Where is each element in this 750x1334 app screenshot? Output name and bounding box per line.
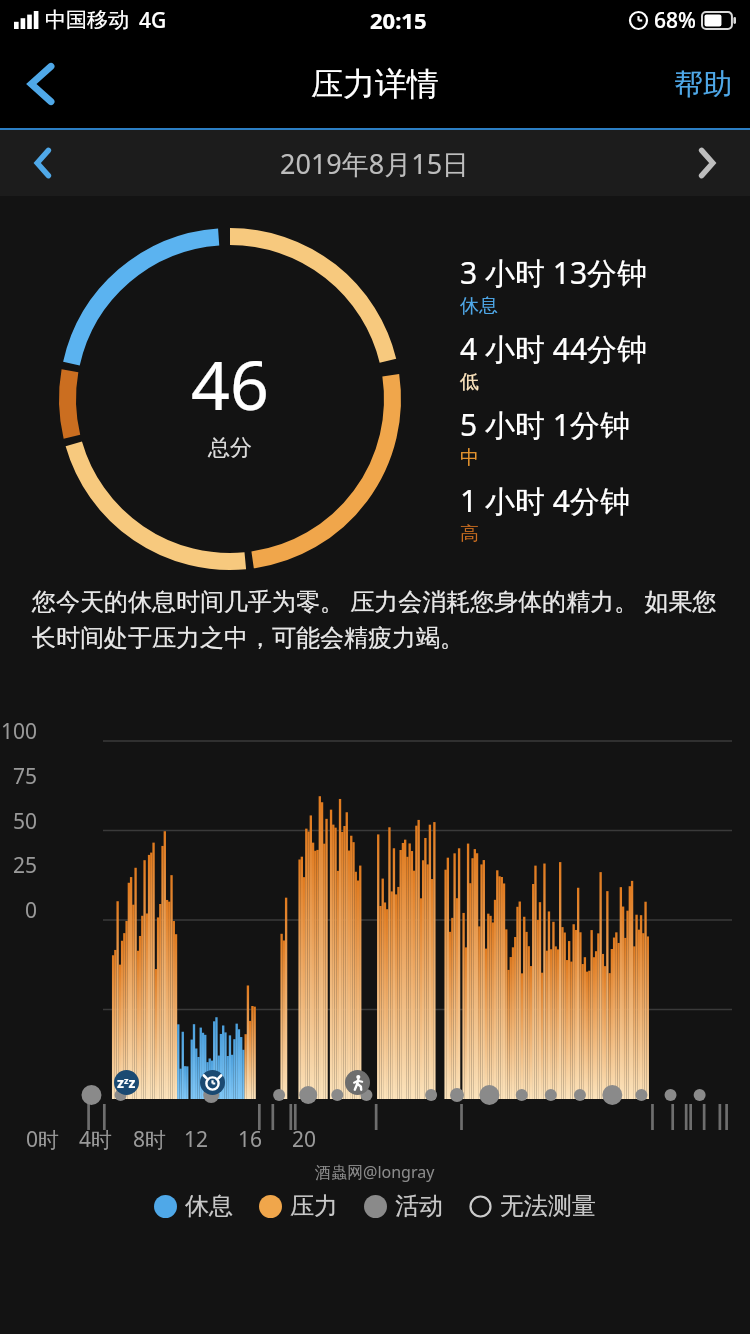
button[interactable]: Alarm	[200, 1070, 225, 1095]
staticText: 46	[191, 337, 269, 430]
staticText: 压力	[290, 1191, 338, 1221]
staticText: 0时	[26, 1125, 60, 1154]
staticText: 100	[1, 717, 38, 746]
staticText: 无法测量	[500, 1191, 596, 1221]
staticText: 高	[460, 522, 479, 546]
staticText: 1 小时 4分钟	[460, 480, 630, 521]
staticText: 50	[13, 807, 38, 836]
staticText: 低	[460, 370, 479, 394]
staticText: 休息	[185, 1191, 233, 1221]
staticText: 您今天的休息时间几乎为零。 压力会消耗您身体的精力。 如果您长时间处于压力之中，…	[32, 584, 718, 653]
staticText: 25	[13, 851, 38, 880]
button[interactable]: 休息	[154, 1191, 233, 1221]
staticText: 中国移动	[45, 7, 129, 33]
staticText: 16时	[238, 1125, 278, 1155]
staticText: 酒蟲网@longray	[315, 1161, 435, 1183]
staticText: 5 小时 1分钟	[460, 404, 630, 445]
button[interactable]: 压力	[259, 1191, 338, 1221]
staticText: 8时	[133, 1125, 167, 1154]
button[interactable]: Next day	[678, 134, 736, 192]
button[interactable]: Previous day	[14, 134, 72, 192]
staticText: 压力详情	[311, 64, 439, 104]
staticText: 20:15	[370, 5, 427, 35]
staticText: 中	[460, 446, 479, 470]
staticText: 3 小时 13分钟	[460, 252, 648, 293]
staticText: 4时	[79, 1125, 113, 1154]
button[interactable]: Sleep	[114, 1070, 139, 1095]
button[interactable]: Back	[10, 52, 74, 116]
staticText: 活动	[395, 1191, 443, 1221]
staticText: 帮助	[674, 66, 732, 103]
staticText: 12时	[184, 1125, 224, 1155]
staticText: 68%	[654, 6, 696, 35]
button[interactable]: 活动	[364, 1191, 443, 1221]
staticText: 总分	[208, 434, 252, 462]
staticText: 2019年8月15日	[280, 145, 470, 182]
staticText: 20时	[292, 1125, 332, 1155]
staticText: 75	[13, 762, 38, 791]
staticText: 4 小时 44分钟	[460, 328, 648, 369]
staticText: 0	[25, 896, 38, 925]
staticText: 4G	[139, 6, 167, 35]
button[interactable]: 帮助	[674, 66, 732, 103]
button[interactable]: 无法测量	[469, 1191, 596, 1221]
staticText: zᶻz	[117, 1073, 136, 1092]
button[interactable]: Activity	[345, 1070, 370, 1095]
staticText: 休息	[460, 294, 498, 318]
